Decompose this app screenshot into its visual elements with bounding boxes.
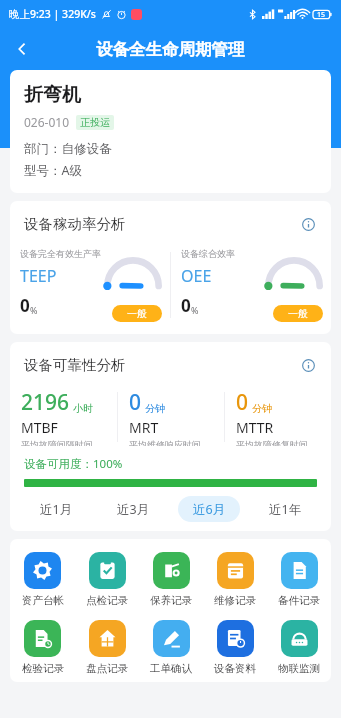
button[interactable]: 0 <box>118 388 224 446</box>
staticText: 维修记录 <box>214 594 256 607</box>
staticText: 点检记录 <box>86 594 128 607</box>
staticText: 平均故障间隔时间 <box>21 439 93 446</box>
staticText: 晚上9:23 | 329K/s <box>9 7 96 21</box>
staticText: 2196 <box>21 388 70 417</box>
staticText: 0 <box>181 294 191 317</box>
button[interactable]: 物联监测 <box>267 619 331 676</box>
staticText: 100% <box>93 456 123 472</box>
button[interactable]: 盘点记录 <box>75 619 139 676</box>
button[interactable]: 一般 <box>112 305 162 322</box>
staticText: 设备完全有效生产率 <box>20 248 101 259</box>
staticText: 型号：A级 <box>24 162 82 179</box>
button[interactable]: 折弯机 <box>10 70 331 193</box>
button[interactable]: 近1年 <box>254 496 316 522</box>
button[interactable]: Back <box>4 31 40 67</box>
button[interactable]: 近6月 <box>178 496 240 522</box>
staticText: 备件记录 <box>278 594 320 607</box>
staticText: 设备资料 <box>214 662 256 675</box>
button[interactable]: Info <box>297 354 319 376</box>
staticText: 近3月 <box>117 501 150 518</box>
staticText: 平均故障修复时间 <box>236 439 308 446</box>
staticText: 平均维修响应时间 <box>129 439 201 446</box>
staticText: 小时 <box>73 402 93 415</box>
staticText: 设备可用度： <box>24 457 93 471</box>
staticText: OEE <box>181 265 212 287</box>
button[interactable]: 备件记录 <box>267 551 331 608</box>
staticText: 一般 <box>127 307 147 320</box>
staticText: 近6月 <box>193 501 226 518</box>
staticText: 设备稼动率分析 <box>24 215 126 233</box>
staticText: 设备综合效率 <box>181 248 235 259</box>
button[interactable]: 设备综合效率 <box>171 246 331 324</box>
staticText: 保养记录 <box>150 594 192 607</box>
staticText: 近1月 <box>40 501 73 518</box>
button[interactable]: 保养记录 <box>139 551 203 608</box>
staticText: 0 <box>236 388 249 417</box>
staticText: 分钟 <box>145 402 165 415</box>
button[interactable]: 近1月 <box>25 496 88 522</box>
button[interactable]: 点检记录 <box>75 551 139 608</box>
button[interactable]: 2196 <box>10 388 117 446</box>
staticText: 工单确认 <box>150 662 192 675</box>
staticText: 检验记录 <box>22 662 64 675</box>
button[interactable]: 一般 <box>273 305 323 322</box>
staticText: 物联监测 <box>278 662 320 675</box>
button[interactable]: 0 <box>225 388 331 446</box>
staticText: 近1年 <box>269 501 302 518</box>
staticText: 026-010 <box>24 114 70 130</box>
staticText: 正投运 <box>80 116 110 129</box>
staticText: % <box>191 304 199 316</box>
staticText: 资产台帐 <box>22 594 64 607</box>
staticText: MTTR <box>236 418 274 437</box>
staticText: 一般 <box>288 307 308 320</box>
button[interactable]: 设备资料 <box>203 619 267 676</box>
staticText: 设备全生命周期管理 <box>96 39 245 60</box>
staticText: 部门：自修设备 <box>24 141 112 157</box>
staticText: TEEP <box>20 265 57 287</box>
button[interactable]: 近3月 <box>102 496 164 522</box>
staticText: MRT <box>129 418 159 437</box>
button[interactable]: 检验记录 <box>10 619 75 676</box>
staticText: MTBF <box>21 418 58 437</box>
staticText: 盘点记录 <box>86 662 128 675</box>
button[interactable]: Info <box>297 213 319 235</box>
button[interactable]: 设备完全有效生产率 <box>10 246 170 324</box>
staticText: 分钟 <box>252 402 272 415</box>
staticText: 15 <box>317 10 326 20</box>
button[interactable]: 维修记录 <box>203 551 267 608</box>
staticText: 设备可靠性分析 <box>24 356 126 374</box>
button[interactable]: 资产台帐 <box>10 551 75 608</box>
staticText: 0 <box>20 294 30 317</box>
staticText: 0 <box>129 388 142 417</box>
staticText: % <box>30 304 38 316</box>
staticText: 折弯机 <box>24 83 81 107</box>
button[interactable]: 工单确认 <box>139 619 203 676</box>
